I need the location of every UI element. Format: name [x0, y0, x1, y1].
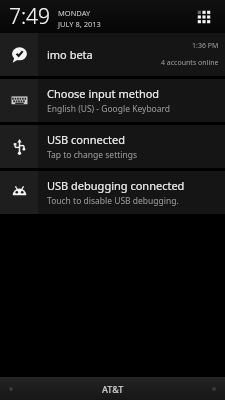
staticText: 7:49	[9, 2, 51, 31]
button[interactable]: Choose input method	[0, 79, 225, 122]
staticText: USB debugging connected	[47, 178, 185, 193]
staticText: Touch to disable USB debugging.	[47, 195, 179, 207]
staticText: 1:36 PM	[192, 41, 219, 51]
staticText: MONDAY	[58, 8, 91, 18]
button[interactable]: imo beta notification	[0, 33, 225, 76]
button[interactable]: USB connected	[0, 125, 225, 168]
staticText: AT&T	[102, 383, 124, 395]
staticText: USB connected	[47, 132, 126, 147]
staticText: Choose input method	[47, 86, 160, 101]
button[interactable]: USB debugging connected	[0, 171, 225, 214]
staticText: English (US) - Google Keyboard	[47, 103, 171, 115]
staticText: imo beta	[47, 47, 93, 62]
staticText: 4 accounts online	[161, 58, 219, 68]
button[interactable]: AT&T	[0, 377, 225, 400]
staticText: JULY 8, 2013	[58, 19, 101, 29]
button[interactable]: Quick settings	[191, 4, 217, 30]
staticText: Tap to change settings	[47, 149, 138, 161]
